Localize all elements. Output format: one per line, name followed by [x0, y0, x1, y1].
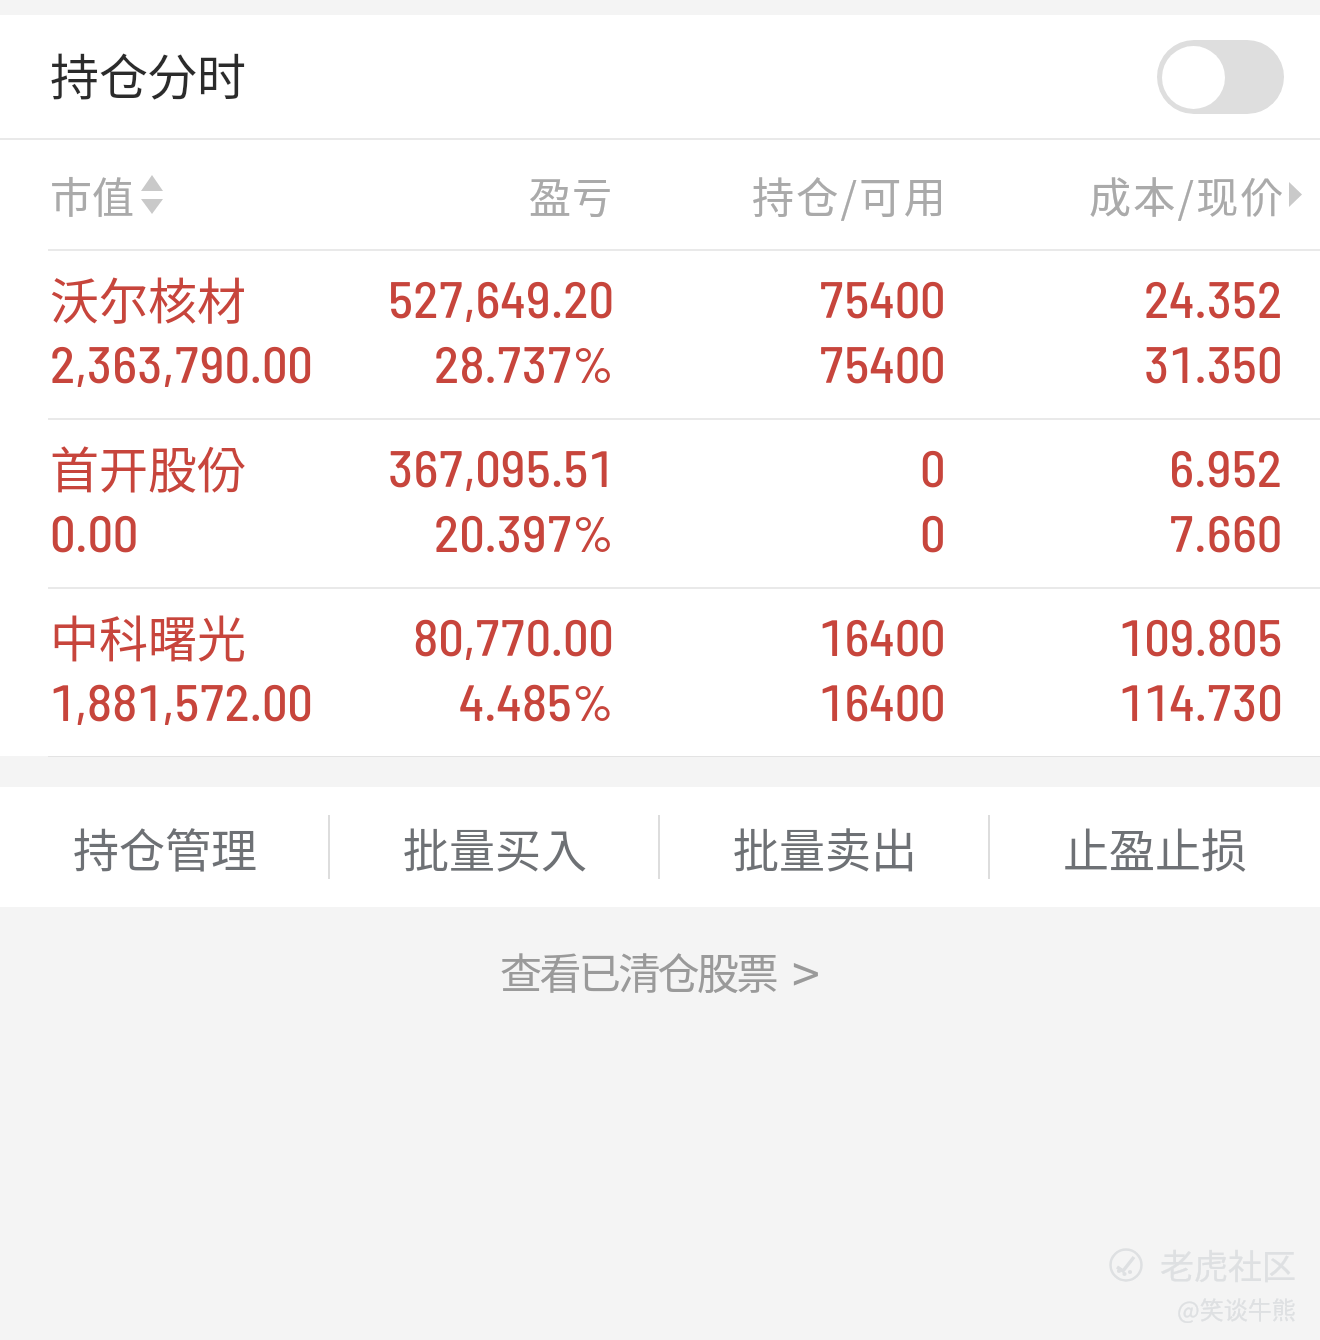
button[interactable]: 查看已清仓股票	[476, 916, 844, 1024]
staticText: 4.485%	[459, 670, 614, 731]
staticText: 批量买入	[403, 814, 587, 881]
button[interactable]: 成本/现价	[1089, 164, 1285, 225]
staticText: 31.350	[1144, 332, 1283, 393]
staticText: 75400	[819, 332, 946, 393]
button[interactable]: 止盈止损	[990, 787, 1320, 907]
staticText: 80,770.00	[413, 605, 614, 666]
staticText: 16400	[819, 605, 946, 666]
staticText: 持仓管理	[73, 814, 257, 881]
button[interactable]: 首开股份	[0, 420, 1320, 587]
staticText: 中科曙光	[50, 600, 247, 671]
staticText: 0	[920, 501, 946, 562]
button[interactable]: 沃尔核材	[0, 251, 1320, 418]
button[interactable]: Hide positions toggle	[1157, 40, 1284, 114]
staticText: 成本/现价	[1089, 164, 1285, 225]
staticText: 114.730	[1119, 670, 1283, 731]
staticText: 老虎社区	[1160, 1240, 1296, 1289]
staticText: 0	[920, 436, 946, 497]
staticText: 止盈止损	[1063, 814, 1247, 881]
button[interactable]: 持仓/可用	[752, 164, 948, 225]
staticText: @笑谈牛熊	[1177, 1291, 1296, 1326]
staticText: 0.00	[50, 501, 138, 562]
staticText: 批量卖出	[733, 814, 917, 881]
staticText: 24.352	[1144, 267, 1283, 328]
staticText: 首开股份	[50, 431, 247, 502]
staticText: 16400	[819, 670, 946, 731]
staticText: 20.397%	[434, 501, 614, 562]
staticText: 市值	[50, 164, 135, 225]
staticText: 持仓/可用	[752, 164, 948, 225]
staticText: 2,363,790.00	[50, 332, 313, 393]
staticText: 75400	[819, 267, 946, 328]
button[interactable]: More columns	[1289, 182, 1302, 207]
button[interactable]: 批量卖出	[660, 787, 990, 907]
staticText: 28.737%	[434, 332, 614, 393]
staticText: 527,649.20	[388, 267, 614, 328]
staticText: 109.805	[1119, 605, 1283, 666]
staticText: 沃尔核材	[50, 262, 247, 333]
staticText: 6.952	[1169, 436, 1283, 497]
staticText: 查看已清仓股票	[500, 940, 776, 1001]
staticText: >	[792, 935, 820, 1007]
button[interactable]: 市值	[50, 164, 163, 225]
button[interactable]: 中科曙光	[0, 589, 1320, 756]
button[interactable]: 批量买入	[330, 787, 660, 907]
staticText: 367,095.51	[388, 436, 614, 497]
staticText: 持仓分时	[50, 38, 247, 109]
button[interactable]: 盈亏	[529, 164, 614, 225]
staticText: 盈亏	[529, 164, 614, 225]
staticText: 1,881,572.00	[50, 670, 313, 731]
button[interactable]: 持仓管理	[0, 787, 330, 907]
staticText: 7.660	[1169, 501, 1283, 562]
